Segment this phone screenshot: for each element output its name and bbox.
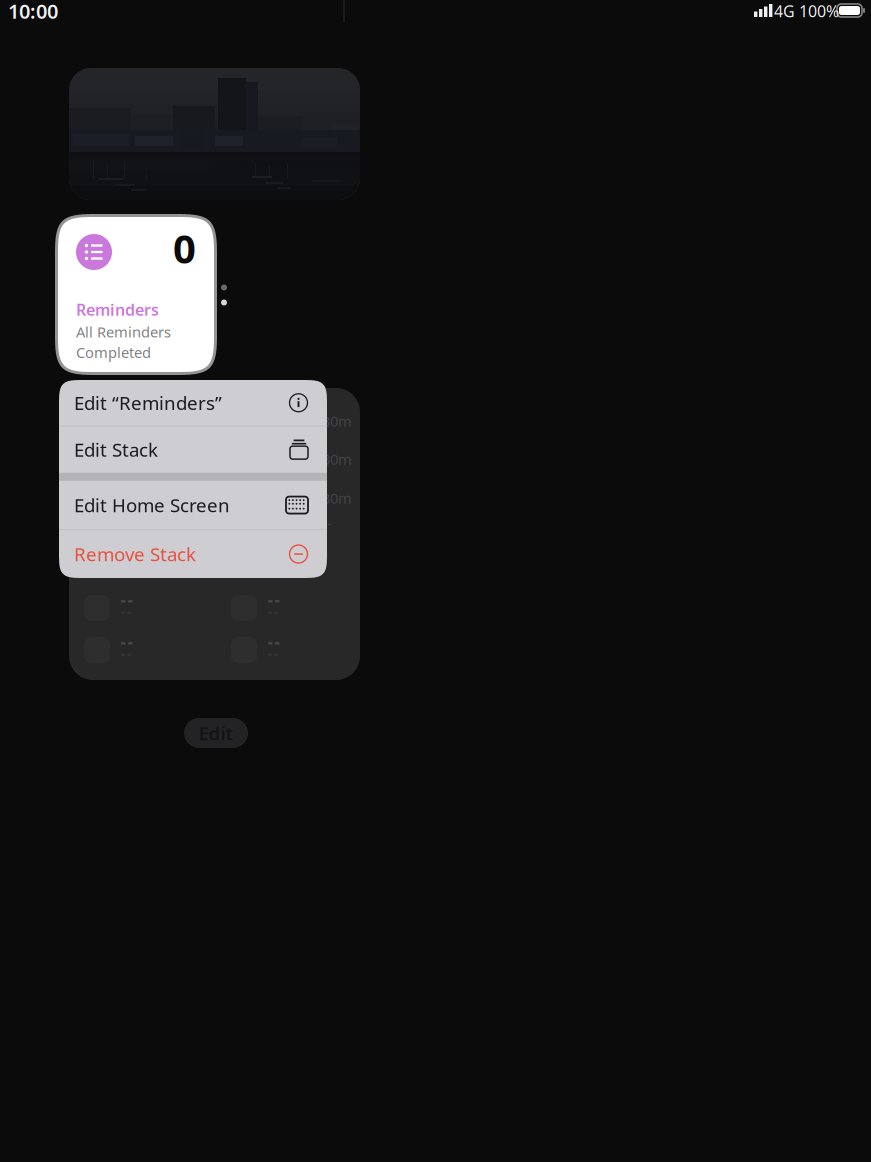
staticText: --	[322, 513, 332, 533]
button[interactable]: Edit	[184, 718, 248, 748]
staticText: Edit Stack	[74, 437, 158, 462]
staticText: All Reminders	[76, 322, 171, 341]
button[interactable]: 0	[55, 214, 217, 375]
staticText: 30m	[322, 488, 352, 508]
button[interactable]: Edit Stack	[59, 426, 327, 473]
staticText: 10:00	[8, 0, 58, 24]
staticText: 30m	[322, 449, 352, 469]
button[interactable]: Remove Stack	[59, 530, 327, 578]
staticText: 0	[173, 221, 196, 274]
staticText: Completed	[76, 342, 151, 362]
staticText: Edit	[198, 721, 233, 745]
button[interactable]: Photos widget	[69, 68, 360, 200]
button[interactable]: Edit “Reminders”	[59, 380, 327, 425]
staticText: 30m	[322, 411, 352, 431]
staticText: 4G 100%	[774, 0, 839, 22]
staticText: Remove Stack	[74, 542, 196, 566]
button[interactable]: Widget	[69, 388, 360, 680]
staticText: Reminders	[76, 299, 159, 320]
staticText: Edit Home Screen	[74, 493, 230, 517]
button[interactable]: Edit Home Screen	[59, 481, 327, 529]
staticText: Edit “Reminders”	[74, 390, 222, 415]
